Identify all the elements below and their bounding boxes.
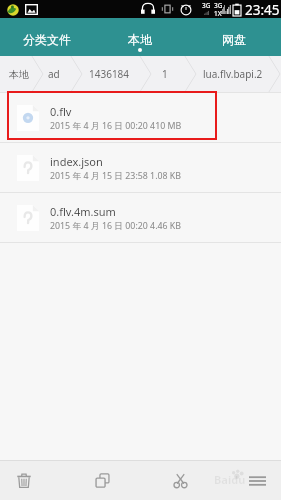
button[interactable]: 本地 (0, 56, 51, 92)
staticText: index.json (50, 154, 103, 169)
button[interactable]: 本地 (93, 18, 187, 56)
staticText: Baidu (214, 472, 246, 487)
staticText: 3G (214, 1, 223, 10)
button[interactable]: lua.flv.bapi.2 (201, 56, 265, 92)
staticText: ad (48, 67, 60, 81)
staticText: 分类文件 (23, 32, 71, 47)
staticText: 2015 年 4 月 16 日 00:20 410 MB (50, 120, 182, 132)
button[interactable]: Copy (67, 461, 137, 500)
button[interactable]: 分类文件 (0, 18, 93, 56)
staticText: 1X (214, 9, 222, 18)
staticText: 本地 (128, 32, 152, 47)
button[interactable]: ad (22, 56, 86, 92)
staticText: 本地 (9, 68, 29, 81)
staticText: 0.flv.4m.sum (50, 204, 116, 219)
button[interactable]: 1436184 (77, 56, 141, 92)
button[interactable]: More (222, 461, 281, 500)
staticText: 2015 年 4 月 15 日 23:58 1.08 KB (50, 170, 182, 182)
staticText: 0.flv (50, 104, 72, 119)
staticText: lua.flv.bapi.2 (203, 67, 263, 81)
button[interactable]: 0.flv.4m.sum (0, 193, 281, 242)
button[interactable]: 1 (133, 56, 197, 92)
staticText: 1 (162, 67, 168, 81)
staticText: 2015 年 4 月 16 日 00:20 4.46 KB (50, 220, 182, 232)
button[interactable]: 网盘 (187, 18, 281, 56)
button[interactable]: 0.flv (0, 93, 281, 142)
button[interactable]: Delete (0, 461, 59, 500)
staticText: 23:45 (245, 1, 280, 19)
staticText: 网盘 (222, 32, 246, 47)
staticText: 1436184 (89, 67, 130, 81)
staticText: 3G (202, 1, 211, 10)
button[interactable]: Cut (145, 461, 215, 500)
button[interactable]: index.json (0, 143, 281, 192)
